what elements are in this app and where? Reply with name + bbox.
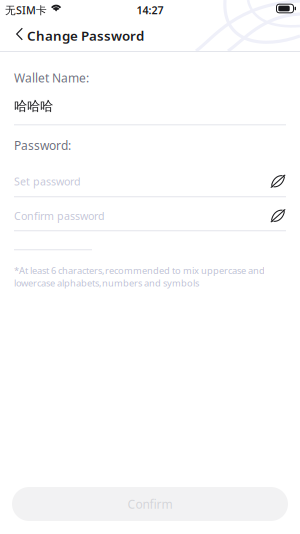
staticText: Password:: [14, 137, 71, 153]
staticText: Change Password: [27, 27, 144, 44]
staticText: Wallet Name:: [14, 70, 89, 86]
button[interactable]: Confirm: [12, 487, 288, 521]
staticText: 无SIM卡: [5, 3, 47, 17]
staticText: Confirm: [127, 496, 172, 512]
button[interactable]: Set password: [14, 166, 286, 196]
staticText: 哈哈哈: [14, 98, 53, 114]
staticText: Set password: [14, 174, 81, 188]
button[interactable]: Confirm password: [14, 197, 286, 230]
staticText: Confirm password: [14, 209, 105, 223]
staticText: 14:27: [136, 3, 163, 17]
staticText: *At least 6 characters,recommended to mi…: [14, 264, 265, 289]
button[interactable]: Back: [0, 21, 27, 49]
